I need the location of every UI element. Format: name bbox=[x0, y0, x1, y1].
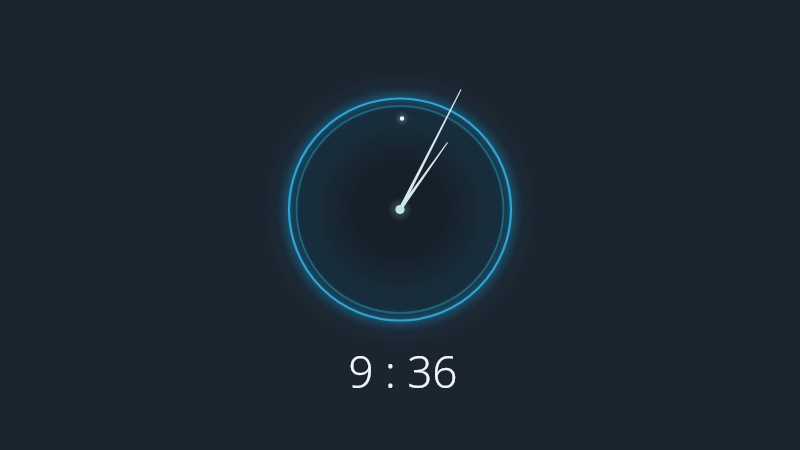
button[interactable]: Analog clock showing 9:36 bbox=[0, 0, 800, 450]
